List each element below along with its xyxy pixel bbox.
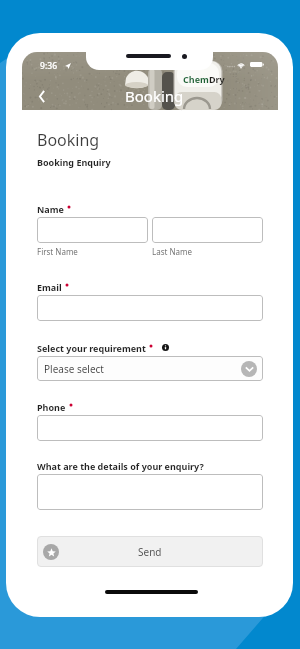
button[interactable] [37, 474, 263, 510]
staticText: Phone [37, 401, 66, 413]
staticText: Booking [37, 129, 100, 151]
staticText: Please select [44, 362, 104, 376]
button[interactable]: More information [162, 344, 169, 351]
button[interactable] [37, 295, 263, 321]
staticText: Chem [183, 73, 209, 85]
staticText: What are the details of your enquiry? [37, 460, 204, 472]
staticText: 9:36 [40, 60, 58, 72]
staticText: Send [138, 545, 162, 559]
staticText: Name [37, 203, 64, 215]
button[interactable]: Please select [37, 356, 263, 381]
button[interactable] [37, 415, 263, 441]
staticText: Last Name [152, 246, 193, 257]
staticText: Email [37, 281, 62, 293]
staticText: First Name [37, 246, 78, 257]
staticText: Dry [209, 73, 225, 85]
staticText: Booking Enquiry [37, 156, 111, 168]
staticText: Select your requirement [37, 342, 146, 354]
button[interactable]: Send [37, 536, 263, 567]
button[interactable] [37, 217, 148, 243]
button[interactable] [152, 217, 263, 243]
staticText: Booking [125, 86, 184, 106]
button[interactable]: Back [28, 82, 56, 110]
